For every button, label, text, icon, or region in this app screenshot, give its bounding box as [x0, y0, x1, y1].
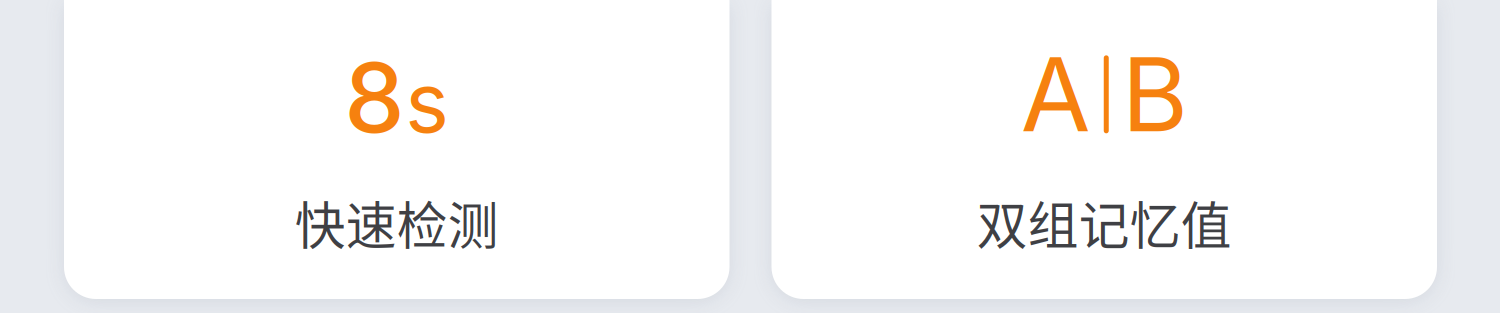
- staticText: B: [1122, 33, 1188, 156]
- button[interactable]: 快速检测: [64, 0, 729, 299]
- staticText: 双组记忆值: [977, 186, 1232, 259]
- button[interactable]: 双组记忆值: [771, 0, 1437, 299]
- staticText: s: [405, 52, 449, 152]
- staticText: A: [1021, 33, 1091, 156]
- staticText: 8: [344, 39, 404, 156]
- staticText: 快速检测: [295, 186, 499, 259]
